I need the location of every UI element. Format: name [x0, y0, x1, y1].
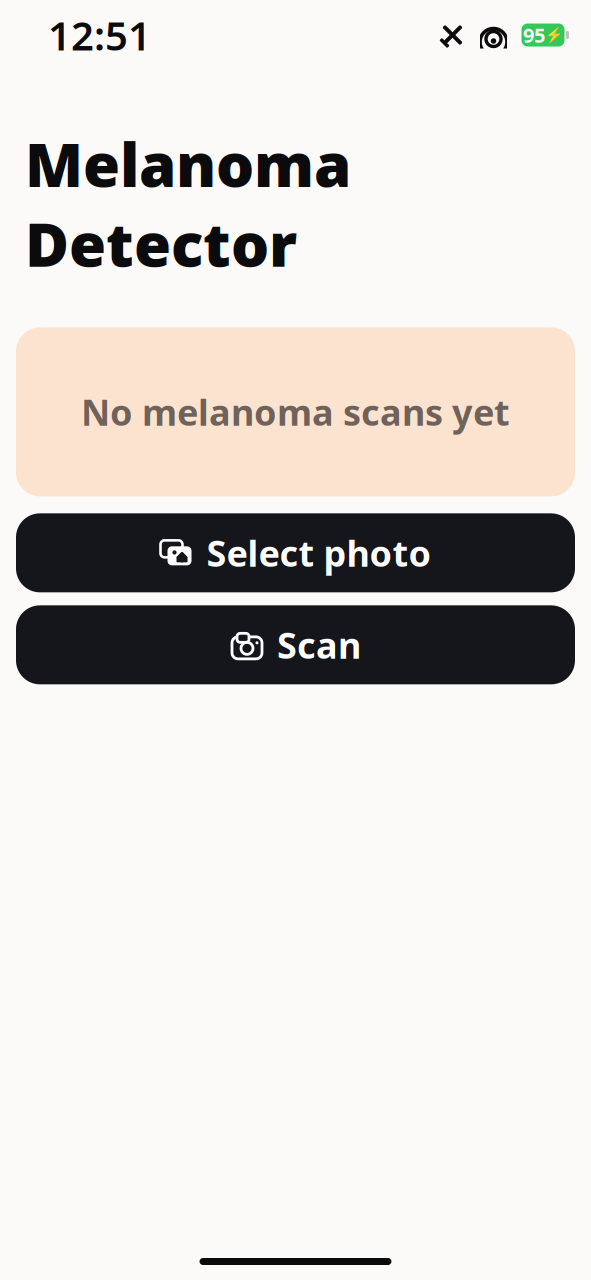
button[interactable]: Scan — [0, 605, 591, 684]
button[interactable]: Select photo — [0, 513, 591, 592]
staticText: 95 — [523, 22, 545, 48]
staticText: Scan — [277, 621, 361, 669]
staticText: ⚡ — [545, 27, 563, 43]
staticText: Melanoma Detector — [25, 124, 351, 283]
staticText: 12:51 — [48, 8, 151, 61]
staticText: Select photo — [206, 529, 431, 577]
staticText: No melanoma scans yet — [81, 388, 510, 436]
